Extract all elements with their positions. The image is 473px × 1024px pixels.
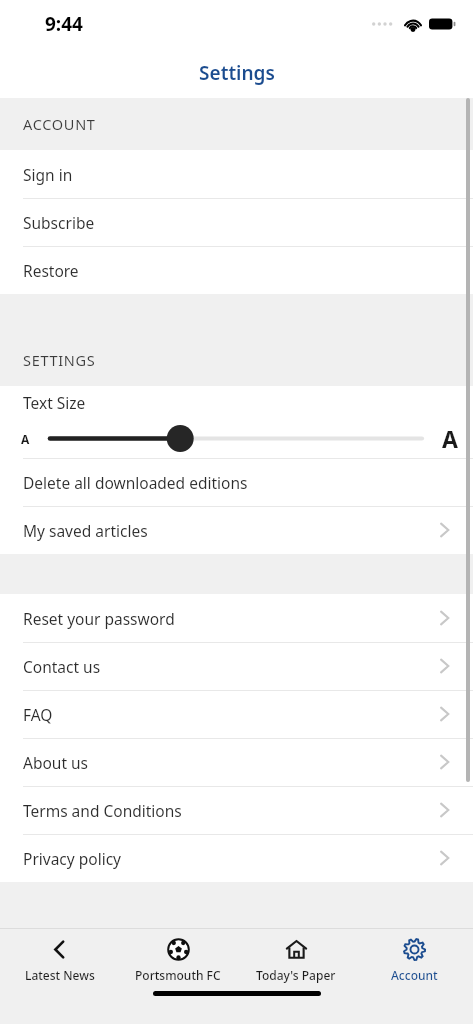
button[interactable]: Subscribe <box>0 198 473 246</box>
staticText: Delete all downloaded editions <box>23 472 248 493</box>
button[interactable]: Delete all downloaded editions <box>0 458 473 506</box>
button[interactable]: Restore <box>0 246 473 294</box>
button[interactable]: Account <box>355 929 473 991</box>
staticText: Reset your password <box>23 608 175 629</box>
staticText: Contact us <box>23 656 101 677</box>
button[interactable]: My saved articles <box>0 506 473 554</box>
other: Account <box>403 938 426 961</box>
button[interactable]: Reset your password <box>0 594 473 642</box>
staticText: Settings <box>199 60 275 86</box>
other: Portsmouth FC <box>167 938 190 961</box>
button[interactable]: Today's Paper <box>237 929 355 991</box>
other: Latest News <box>48 938 71 961</box>
staticText: Sign in <box>23 164 73 185</box>
staticText: A <box>442 423 458 454</box>
staticText: Text Size <box>23 392 86 413</box>
staticText: Today's Paper <box>256 967 336 983</box>
staticText: FAQ <box>23 704 53 725</box>
staticText: A <box>21 431 30 447</box>
staticText: About us <box>23 752 89 773</box>
staticText: Latest News <box>25 967 95 983</box>
staticText: Subscribe <box>23 212 95 233</box>
staticText: My saved articles <box>23 520 148 541</box>
staticText: Restore <box>23 260 79 281</box>
staticText: Privacy policy <box>23 848 121 869</box>
other: Today's Paper <box>285 938 308 961</box>
staticText: Portsmouth FC <box>135 967 221 983</box>
button[interactable]: Privacy policy <box>0 834 473 882</box>
button[interactable]: Latest News <box>0 929 119 991</box>
staticText: SETTINGS <box>23 350 96 370</box>
button[interactable]: Terms and Conditions <box>0 786 473 834</box>
button[interactable]: Sign in <box>0 150 473 198</box>
staticText: Terms and Conditions <box>23 800 182 821</box>
staticText: 9:44 <box>45 11 83 37</box>
button[interactable]: About us <box>0 738 473 786</box>
button[interactable]: Portsmouth FC <box>119 929 237 991</box>
button[interactable]: FAQ <box>0 690 473 738</box>
staticText: Account <box>391 967 438 983</box>
staticText: ACCOUNT <box>23 114 96 134</box>
button[interactable]: Contact us <box>0 642 473 690</box>
button[interactable] <box>50 419 422 458</box>
